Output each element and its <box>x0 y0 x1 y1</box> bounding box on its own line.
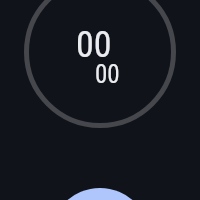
staticText: 00 <box>76 24 112 66</box>
staticText: 00 <box>95 60 120 89</box>
button[interactable] <box>50 188 150 200</box>
